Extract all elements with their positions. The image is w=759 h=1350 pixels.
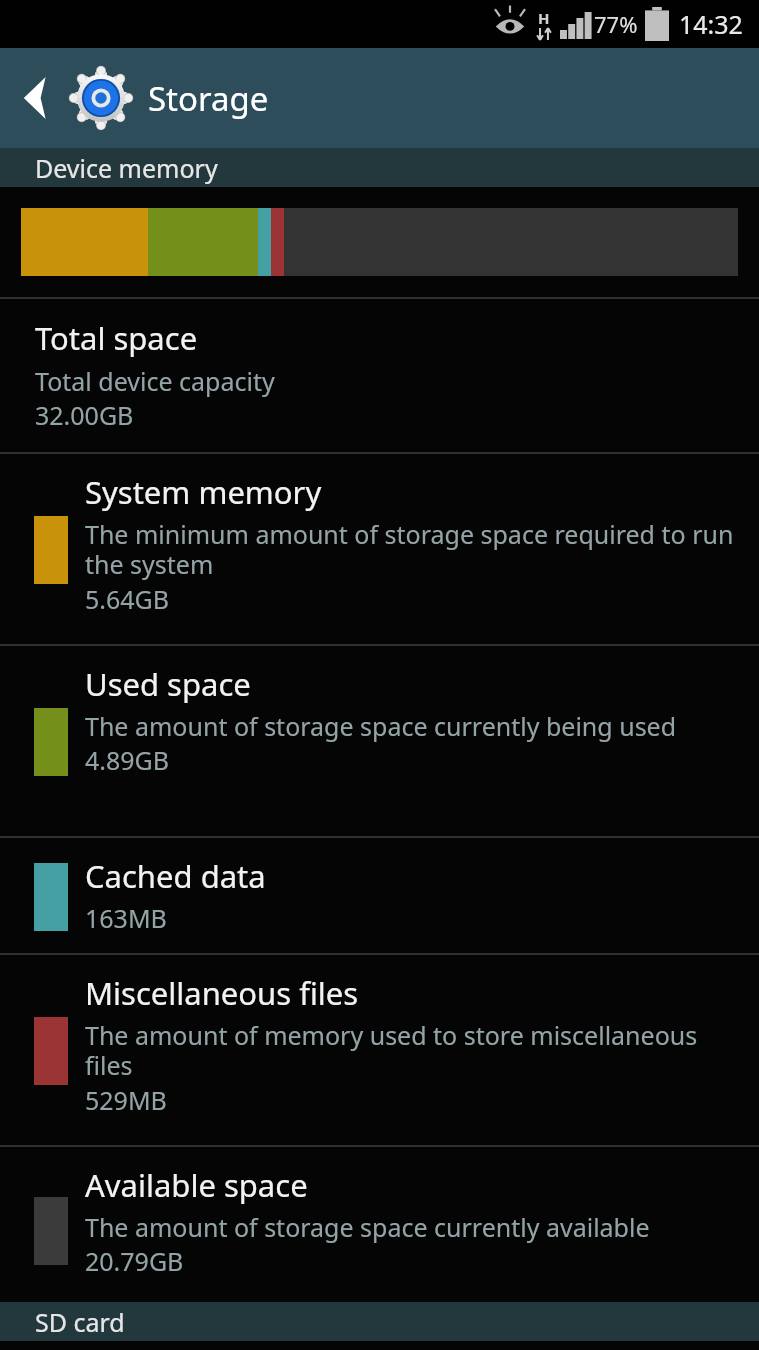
staticText: System memory — [85, 471, 322, 513]
staticText: Available space — [85, 1164, 308, 1206]
staticText: H — [538, 8, 550, 28]
staticText: SD card — [35, 1305, 125, 1339]
staticText: 14:32 — [679, 7, 743, 41]
staticText: Device memory — [35, 151, 218, 185]
button[interactable]: Back — [0, 48, 70, 148]
staticText: Used space — [85, 663, 251, 705]
staticText: 20.79GB — [85, 1244, 184, 1278]
button[interactable]: Miscellaneous files — [0, 955, 759, 1145]
button[interactable]: Cached data — [0, 838, 759, 953]
staticText: 529MB — [85, 1083, 167, 1117]
staticText: The amount of storage space currently av… — [85, 1210, 650, 1244]
button[interactable]: Total space — [0, 299, 759, 452]
staticText: 77% — [594, 9, 638, 39]
staticText: 32.00GB — [35, 398, 134, 432]
staticText: Total device capacity — [35, 364, 275, 398]
staticText: Miscellaneous files — [85, 972, 359, 1014]
staticText: 5.64GB — [85, 582, 170, 616]
staticText: Storage — [148, 76, 269, 121]
staticText: 4.89GB — [85, 743, 170, 777]
staticText: The amount of storage space currently be… — [85, 709, 677, 743]
staticText: Total space — [35, 317, 198, 359]
staticText: The amount of memory used to store misce… — [85, 1018, 735, 1083]
staticText: Cached data — [85, 855, 266, 897]
button[interactable]: Available space — [0, 1147, 759, 1302]
button[interactable]: Used space — [0, 646, 759, 836]
button[interactable]: System memory — [0, 454, 759, 644]
staticText: The minimum amount of storage space requ… — [85, 517, 735, 582]
staticText: 163MB — [85, 901, 167, 935]
